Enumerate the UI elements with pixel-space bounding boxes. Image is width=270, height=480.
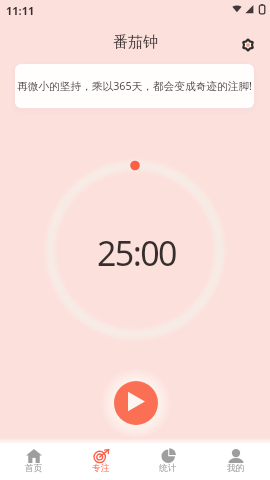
button[interactable]: Start timer <box>114 381 158 425</box>
staticText: 番茄钟 <box>113 33 158 52</box>
button[interactable]: 专注 <box>67 443 134 480</box>
button[interactable]: 统计 <box>134 443 202 480</box>
staticText: 我的 <box>227 463 245 474</box>
staticText: 11:11 <box>6 3 35 18</box>
button[interactable]: 首页 <box>0 443 67 480</box>
staticText: 再微小的坚持，乘以365天，都会变成奇迹的注脚! <box>17 79 252 94</box>
staticText: 25:00 <box>97 230 176 276</box>
staticText: 首页 <box>25 463 43 474</box>
staticText: 统计 <box>159 463 177 474</box>
button[interactable]: Settings <box>236 33 259 56</box>
button[interactable]: 我的 <box>202 443 270 480</box>
staticText: 专注 <box>92 463 110 474</box>
